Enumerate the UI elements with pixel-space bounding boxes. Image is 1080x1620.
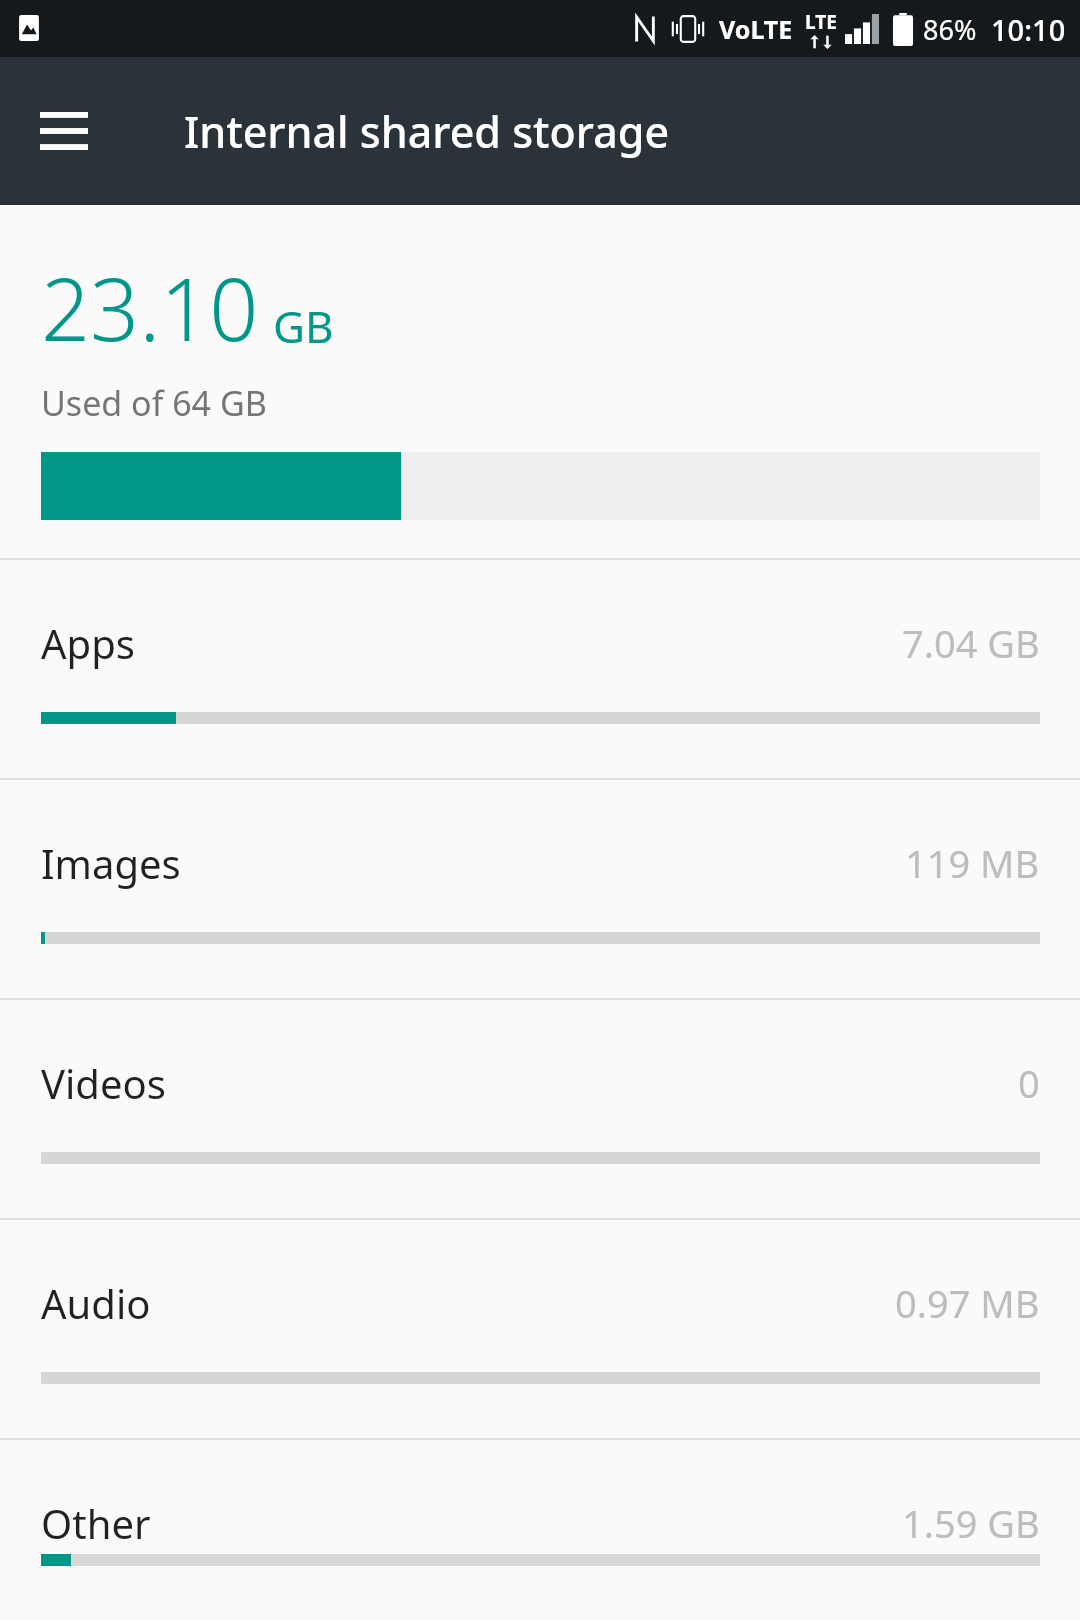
- staticText: Other: [41, 1496, 151, 1550]
- staticText: Apps: [41, 616, 135, 670]
- staticText: LTE: [805, 9, 837, 35]
- staticText: 0: [1018, 1057, 1040, 1109]
- staticText: VoLTE: [719, 12, 793, 46]
- button[interactable]: Videos: [0, 1000, 1080, 1218]
- staticText: 119 MB: [905, 837, 1040, 889]
- staticText: Used of 64 GB: [41, 380, 267, 426]
- staticText: 10:10: [991, 10, 1066, 49]
- staticText: Images: [41, 836, 181, 890]
- staticText: Internal shared storage: [184, 102, 670, 161]
- staticText: 1.59 GB: [902, 1497, 1040, 1549]
- staticText: 0.97 MB: [895, 1277, 1040, 1329]
- staticText: 7.04 GB: [902, 617, 1040, 669]
- staticText: Audio: [41, 1276, 151, 1330]
- button[interactable]: Open navigation menu: [22, 89, 106, 173]
- button[interactable]: Apps: [0, 560, 1080, 778]
- button[interactable]: Images: [0, 780, 1080, 998]
- staticText: GB: [273, 296, 334, 356]
- button[interactable]: Other: [0, 1440, 1080, 1620]
- button[interactable]: Audio: [0, 1220, 1080, 1438]
- staticText: 23.10: [41, 249, 259, 366]
- staticText: 86%: [923, 11, 977, 48]
- staticText: Videos: [41, 1056, 166, 1110]
